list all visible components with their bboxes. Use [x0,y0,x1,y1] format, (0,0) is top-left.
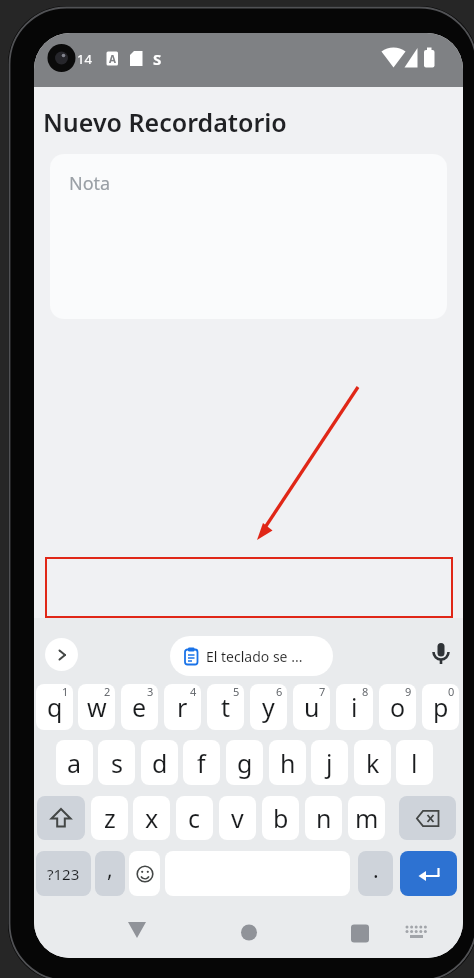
button[interactable] [340,910,380,950]
staticText: l [411,746,418,780]
button[interactable]: q [36,684,73,730]
staticText: i [351,690,358,724]
staticText: 3 [147,684,154,699]
staticText: p [433,690,449,724]
button[interactable]: p [422,684,459,730]
staticText: x [145,801,159,835]
staticText: 2 [104,684,111,699]
staticText: 0 [448,684,455,699]
button[interactable]: y [250,684,287,730]
button[interactable]: b [262,796,299,840]
staticText: t [221,690,231,724]
staticText: Nuevo Recordatorio [43,105,287,139]
staticText: k [366,746,380,780]
button[interactable]: r [164,684,201,730]
button[interactable]: k [354,740,391,785]
button[interactable] [424,626,454,686]
staticText: o [390,690,406,724]
staticText: 8 [362,684,369,699]
button[interactable]: , [95,851,125,896]
button[interactable]: Nota [50,154,447,319]
staticText: g [237,746,253,780]
button[interactable]: d [141,740,178,785]
button[interactable]: c [176,796,213,840]
button[interactable]: m [348,796,385,840]
button[interactable] [117,910,157,950]
button[interactable] [399,796,456,840]
staticText: z [104,801,116,835]
button[interactable]: j [311,740,348,785]
staticText: S [153,49,162,69]
button[interactable]: El teclado se ... [170,636,333,676]
staticText: r [177,690,188,724]
staticText: w [87,690,107,724]
staticText: a [67,746,82,780]
staticText: El teclado se ... [206,647,303,666]
button[interactable]: u [293,684,330,730]
staticText: j [326,746,333,780]
staticText: b [273,801,289,835]
button[interactable]: w [78,684,115,730]
staticText: m [355,801,379,835]
button[interactable]: o [379,684,416,730]
button[interactable]: f [183,740,220,785]
button[interactable] [37,796,85,840]
staticText: h [280,746,296,780]
staticText: A [109,52,116,66]
button[interactable]: t [207,684,244,730]
staticText: c [188,801,201,835]
staticText: s [111,746,123,780]
staticText: v [231,801,244,835]
staticText: q [47,690,63,724]
button[interactable]: g [226,740,263,785]
staticText: 7 [319,684,326,699]
staticText: n [316,801,332,835]
button[interactable] [45,557,453,618]
staticText: 5 [233,684,240,699]
staticText: . [373,856,379,885]
button[interactable]: s [98,740,135,785]
staticText: 6 [276,684,283,699]
button[interactable]: l [396,740,433,785]
staticText: u [304,690,320,724]
button[interactable]: v [219,796,256,840]
staticText: d [152,746,168,780]
button[interactable]: x [133,796,170,840]
button[interactable]: ?123 [36,851,91,896]
button[interactable] [229,910,269,950]
staticText: 14 [77,50,92,68]
button[interactable]: a [56,740,93,785]
button[interactable]: n [305,796,342,840]
staticText: 4 [190,684,197,699]
staticText: 1 [62,684,69,699]
staticText: ?123 [47,864,80,884]
staticText: Nota [69,171,111,196]
staticText: f [197,746,206,780]
staticText: 9 [405,684,412,699]
button[interactable]: . [358,851,393,896]
button[interactable]: i [336,684,373,730]
staticText: , [107,855,113,884]
button[interactable] [129,851,160,896]
button[interactable]: h [269,740,306,785]
staticText: e [132,690,147,724]
button[interactable]: z [91,796,128,840]
staticText: y [262,690,275,724]
button[interactable] [400,851,457,896]
button[interactable] [45,638,78,671]
button[interactable]: e [121,684,158,730]
